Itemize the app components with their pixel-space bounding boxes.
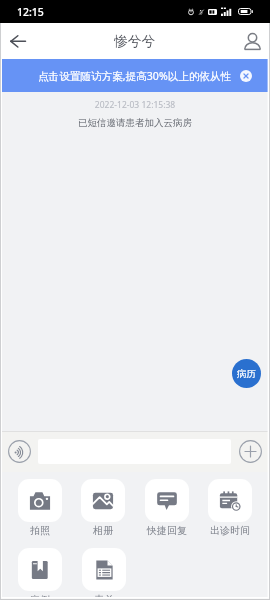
button[interactable]: Close xyxy=(239,69,252,82)
staticText: 已短信邀请患者加入云病房 xyxy=(0,117,270,129)
button[interactable]: Back xyxy=(6,29,30,53)
staticText: 出诊时间 xyxy=(208,524,252,537)
other: Clinic hours xyxy=(218,489,242,513)
other: Quick reply xyxy=(155,489,179,513)
button[interactable]: Clinic hours xyxy=(208,479,252,537)
staticText: 病历 xyxy=(237,368,256,380)
staticText: 病例 xyxy=(18,593,62,600)
staticText: 点击设置随访方案,提高30%以上的依从性 xyxy=(38,69,232,83)
staticText: 拍照 xyxy=(18,524,62,537)
button[interactable]: 点击设置随访方案,提高30%以上的依从性 xyxy=(0,59,270,92)
staticText: 惨兮兮 xyxy=(114,33,156,50)
other: Case record xyxy=(28,558,52,582)
staticText: 相册 xyxy=(81,524,125,537)
other: Take photo xyxy=(28,489,52,513)
staticText: 12:15 xyxy=(17,5,44,19)
button[interactable]: Profile xyxy=(240,29,264,53)
button[interactable]: Take photo xyxy=(18,479,62,537)
other: Album xyxy=(91,489,115,513)
button[interactable]: Case record xyxy=(18,548,62,600)
button[interactable]: Form xyxy=(82,548,126,600)
staticText: 快捷回复 xyxy=(145,524,189,537)
other: Form xyxy=(92,558,116,582)
button[interactable]: Voice input xyxy=(8,440,31,463)
staticText: 2022-12-03 12:15:38 xyxy=(0,99,270,111)
button[interactable]: Album xyxy=(81,479,125,537)
staticText: 表单 xyxy=(82,593,126,600)
button[interactable]: More options xyxy=(239,440,262,463)
button[interactable]: Quick reply xyxy=(145,479,189,537)
button[interactable]: 病历 xyxy=(232,359,261,388)
